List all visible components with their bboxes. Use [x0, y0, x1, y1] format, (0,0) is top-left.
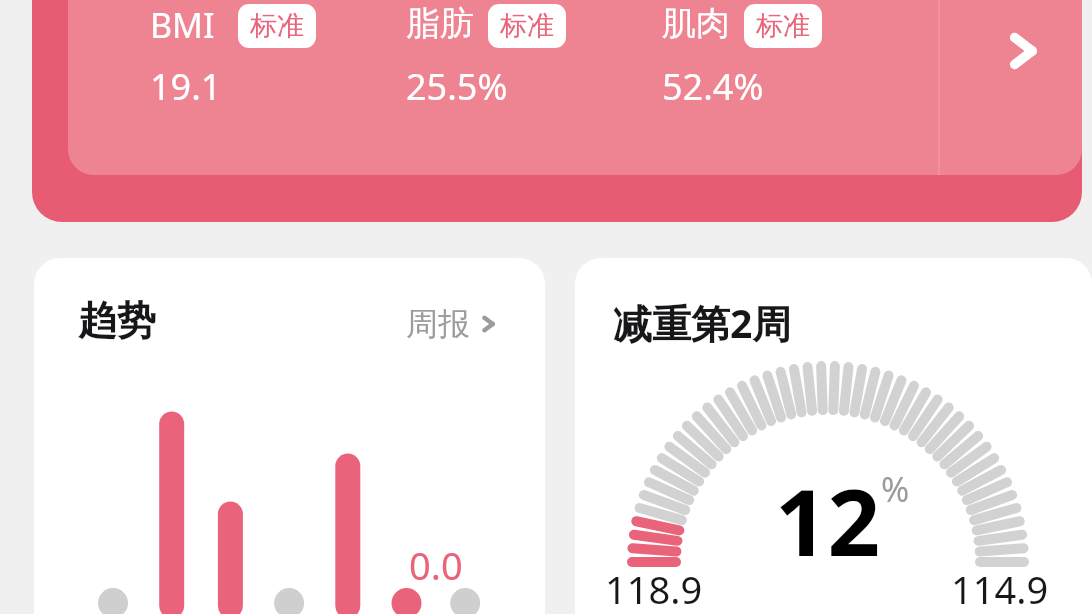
button[interactable]: BMI	[32, 0, 1082, 222]
staticText: 肌肉	[662, 2, 730, 45]
staticText: 118.9	[605, 563, 703, 614]
staticText: %	[881, 466, 910, 512]
staticText: 19.1	[150, 62, 222, 111]
button[interactable]: View body composition details	[968, 0, 1078, 106]
staticText: 114.9	[951, 563, 1049, 614]
staticText: 52.4%	[662, 62, 764, 111]
button[interactable]: 周报	[406, 304, 500, 344]
staticText: 减重第2周	[613, 296, 792, 349]
staticText: 周报	[406, 304, 470, 344]
staticText: 标准	[250, 9, 304, 43]
staticText: 趋势	[78, 296, 156, 345]
staticText: 12	[775, 458, 881, 583]
staticText: 25.5%	[406, 62, 508, 111]
button[interactable]: 减重第2周	[575, 258, 1092, 614]
staticText: 脂肪	[406, 2, 474, 45]
staticText: BMI	[150, 2, 215, 48]
staticText: 0.0	[409, 539, 463, 591]
staticText: 标准	[500, 9, 554, 43]
staticText: 标准	[756, 9, 810, 43]
button[interactable]: 趋势	[34, 258, 545, 614]
